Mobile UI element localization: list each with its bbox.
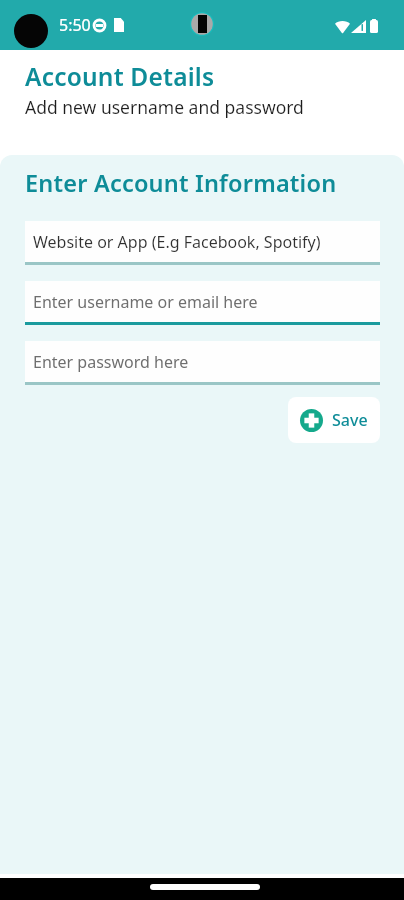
staticText: Enter Account Information (25, 167, 337, 199)
button[interactable]: Save (288, 397, 380, 443)
button[interactable]: Enter username or email here (25, 281, 380, 325)
staticText: Website or App (E.g Facebook, Spotify) (33, 231, 321, 253)
staticText: Account Details (25, 60, 215, 93)
staticText: Enter username or email here (33, 291, 258, 313)
staticText: 5:50 (59, 14, 91, 36)
other: Home (150, 884, 260, 890)
button[interactable]: Enter password here (25, 341, 380, 385)
button[interactable]: Website or App (E.g Facebook, Spotify) (25, 221, 380, 265)
staticText: Save (332, 409, 368, 431)
staticText: Add new username and password (25, 95, 304, 119)
staticText: Enter password here (33, 351, 189, 373)
